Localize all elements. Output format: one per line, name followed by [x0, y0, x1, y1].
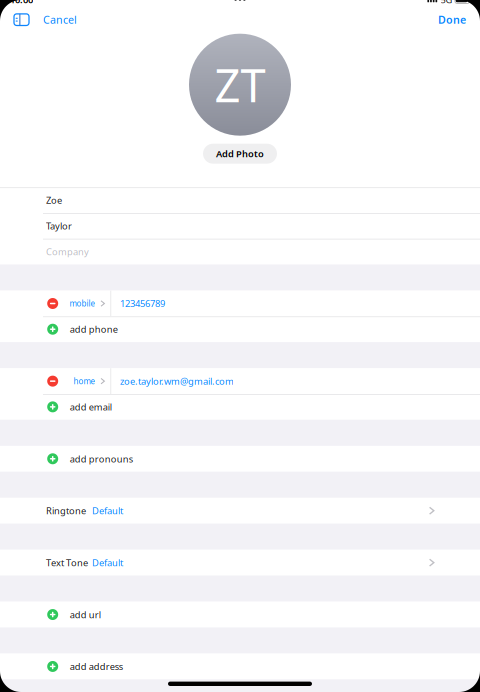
staticText: add email [70, 401, 112, 413]
staticText: Done [438, 13, 466, 27]
staticText: 10:00 [10, 0, 33, 6]
staticText: Ringtone [46, 504, 86, 517]
button[interactable]: add url [0, 602, 480, 627]
staticText: ZT [214, 55, 265, 115]
staticText: Add Photo [216, 147, 264, 160]
staticText: add pronouns [70, 453, 133, 465]
staticText: add phone [70, 323, 118, 335]
button[interactable]: Show Sidebar [0, 8, 35, 31]
button[interactable]: Cancel [35, 8, 85, 32]
staticText: Zoe [46, 194, 62, 206]
staticText: add url [70, 608, 101, 621]
staticText: Company [46, 245, 89, 258]
button[interactable]: add pronouns [0, 446, 480, 472]
staticText: Cancel [43, 13, 77, 27]
button[interactable]: Add Photo [203, 144, 277, 164]
button[interactable]: add phone [0, 316, 480, 342]
button[interactable]: Ringtone [0, 498, 480, 523]
button[interactable]: mobile [0, 291, 480, 316]
staticText: 123456789 [120, 297, 165, 310]
staticText: mobile [69, 298, 95, 309]
staticText: Taylor [46, 220, 72, 232]
staticText: Default [92, 504, 123, 517]
button[interactable]: add address [0, 654, 480, 679]
staticText: 5G [440, 0, 452, 6]
staticText: Default [92, 556, 123, 569]
button[interactable]: home [0, 368, 480, 394]
button[interactable]: add email [0, 394, 480, 420]
staticText: zoe.taylor.wm@gmail.com [120, 375, 234, 387]
button[interactable]: Done [430, 8, 480, 32]
staticText: home [73, 376, 95, 386]
staticText: Text Tone [46, 556, 88, 569]
button[interactable]: Text Tone [0, 550, 480, 575]
staticText: add address [70, 660, 123, 673]
